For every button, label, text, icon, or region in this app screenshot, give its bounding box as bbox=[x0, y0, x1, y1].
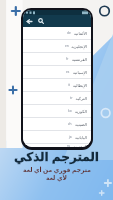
staticText: de bbox=[67, 31, 71, 35]
staticText: الفرنسية bbox=[71, 57, 87, 62]
staticText: الإسبانية bbox=[72, 70, 87, 75]
button[interactable]: zh bbox=[23, 118, 91, 130]
button[interactable]: ru bbox=[23, 144, 91, 147]
staticText: الكورية bbox=[74, 109, 87, 114]
button[interactable]: Back bbox=[23, 15, 35, 27]
staticText: الألمانية bbox=[73, 31, 87, 36]
staticText: en bbox=[65, 44, 69, 48]
button[interactable]: en bbox=[23, 40, 91, 52]
button[interactable]: Search bbox=[35, 15, 47, 27]
staticText: es bbox=[66, 70, 70, 74]
staticText: ja bbox=[69, 135, 72, 139]
staticText: الإنجليزية bbox=[71, 44, 87, 49]
staticText: المترجم الذكي bbox=[14, 148, 99, 164]
staticText: التركية bbox=[75, 96, 87, 101]
staticText: مترجم فوري من أي لغة bbox=[23, 166, 91, 174]
button[interactable]: de bbox=[23, 27, 91, 39]
staticText: it bbox=[68, 83, 70, 87]
button[interactable]: tr bbox=[23, 92, 91, 104]
staticText: الصينية bbox=[74, 122, 87, 127]
staticText: الروسية bbox=[73, 144, 87, 147]
button[interactable]: es bbox=[23, 66, 91, 78]
button[interactable]: it bbox=[23, 79, 91, 91]
staticText: اليابانية bbox=[74, 135, 87, 140]
button[interactable]: ko bbox=[23, 105, 91, 117]
staticText: لأي لغة bbox=[46, 174, 67, 182]
staticText: ko bbox=[68, 109, 72, 113]
staticText: fr bbox=[66, 57, 69, 61]
button[interactable]: ja bbox=[23, 131, 91, 143]
staticText: zh bbox=[68, 122, 72, 126]
staticText: tr bbox=[70, 96, 73, 100]
button[interactable]: fr bbox=[23, 53, 91, 65]
staticText: ru bbox=[67, 144, 71, 147]
staticText: الإيطالية bbox=[72, 83, 87, 88]
